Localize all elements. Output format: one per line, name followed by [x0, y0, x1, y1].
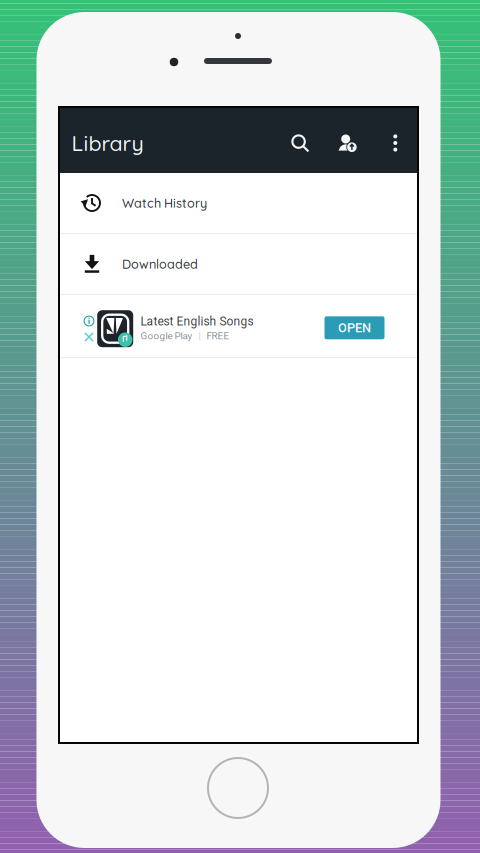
button[interactable]: OPEN	[324, 316, 384, 339]
button[interactable]: Account	[327, 113, 369, 173]
button[interactable]: Watch History	[60, 173, 417, 233]
button[interactable]: Ad information	[81, 313, 97, 329]
staticText: FREE	[206, 330, 229, 342]
staticText: Watch History	[122, 195, 207, 211]
button[interactable]: More options	[378, 113, 412, 173]
staticText: Latest English Songs	[140, 314, 253, 328]
button[interactable]: Downloaded	[60, 234, 417, 294]
staticText: Downloaded	[122, 256, 198, 272]
staticText: OPEN	[338, 320, 371, 335]
button[interactable]: Close ad	[81, 329, 97, 345]
staticText: Library	[71, 130, 143, 156]
staticText: |	[192, 330, 206, 342]
staticText: Google Play	[140, 330, 192, 342]
button[interactable]: Search	[279, 113, 321, 173]
button[interactable]: Latest English Songs app icon	[96, 309, 134, 348]
